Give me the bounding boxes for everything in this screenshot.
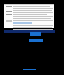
button[interactable]: Toolbar (4, 30, 55, 33)
button[interactable] (4, 4, 54, 28)
